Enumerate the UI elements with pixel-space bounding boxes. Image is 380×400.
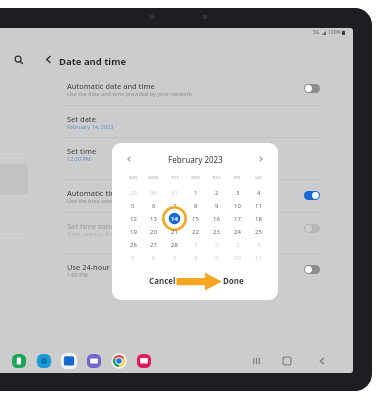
button[interactable]: Home bbox=[277, 351, 297, 371]
button[interactable]: Set time zone bbox=[0, 213, 380, 253]
staticText: Time zone Los Angeles bbox=[67, 230, 126, 237]
button[interactable]: 4 bbox=[248, 186, 269, 199]
button[interactable]: Play Store bbox=[81, 350, 106, 372]
button[interactable]: Chrome bbox=[106, 350, 131, 372]
staticText: 4 bbox=[257, 189, 261, 197]
staticText: 4 bbox=[257, 241, 261, 249]
button[interactable]: 3 bbox=[227, 186, 248, 199]
button[interactable]: Toggle bbox=[304, 191, 320, 200]
staticText: Set time bbox=[67, 146, 97, 156]
button[interactable]: 14 bbox=[164, 212, 185, 225]
button[interactable]: Cancel bbox=[146, 272, 179, 289]
staticText: 100% bbox=[328, 29, 341, 36]
staticText: 26 bbox=[130, 241, 137, 249]
staticText: 21 bbox=[171, 228, 178, 236]
button[interactable]: 1 bbox=[185, 186, 206, 199]
staticText: February 14, 2023 bbox=[67, 123, 114, 130]
button[interactable]: 19 bbox=[123, 225, 143, 238]
button[interactable]: 9 bbox=[206, 251, 227, 264]
button[interactable]: 20 bbox=[143, 225, 164, 238]
button[interactable]: Automatic date and time bbox=[0, 73, 380, 105]
button[interactable]: 1 bbox=[185, 238, 206, 251]
button[interactable]: 15 bbox=[185, 212, 206, 225]
staticText: 23 bbox=[213, 228, 220, 236]
button[interactable]: Toggle bbox=[304, 224, 320, 233]
staticText: 8 bbox=[194, 202, 198, 210]
staticText: SUN bbox=[129, 175, 138, 181]
button[interactable]: Previous month bbox=[121, 151, 137, 167]
staticText: 25 bbox=[255, 228, 262, 236]
button[interactable]: Automatic time zone bbox=[0, 180, 380, 212]
button[interactable]: 6 bbox=[143, 199, 164, 212]
staticText: 20 bbox=[150, 228, 157, 236]
button[interactable]: Set date bbox=[0, 106, 380, 137]
button[interactable]: 11 bbox=[248, 199, 269, 212]
button[interactable]: 17 bbox=[227, 212, 248, 225]
button[interactable]: Search bbox=[9, 50, 29, 70]
button[interactable]: 7 bbox=[164, 199, 185, 212]
button[interactable]: 29 bbox=[123, 186, 143, 199]
button[interactable]: 11 bbox=[248, 251, 269, 264]
button[interactable]: Gallery bbox=[131, 350, 156, 372]
button[interactable]: 10 bbox=[227, 199, 248, 212]
staticText: THU bbox=[212, 175, 221, 181]
button[interactable]: Next month bbox=[253, 151, 269, 167]
button[interactable]: 27 bbox=[143, 238, 164, 251]
staticText: 14 bbox=[171, 215, 178, 223]
staticText: 28 bbox=[171, 241, 178, 249]
button[interactable]: 5 bbox=[123, 251, 143, 264]
staticText: 10 bbox=[234, 254, 241, 262]
staticText: 27 bbox=[150, 241, 157, 249]
button[interactable]: Set time bbox=[0, 138, 380, 179]
button[interactable]: Toggle bbox=[304, 84, 320, 93]
button[interactable]: Toggle bbox=[304, 265, 320, 274]
staticText: Use the date and time provided by your n… bbox=[67, 90, 192, 97]
button[interactable]: Phone bbox=[6, 350, 31, 372]
staticText: 13 bbox=[150, 215, 157, 223]
button[interactable]: 23 bbox=[206, 225, 227, 238]
staticText: 12:20 PM bbox=[67, 155, 91, 162]
button[interactable]: Camera bbox=[31, 350, 56, 372]
button[interactable]: 2 bbox=[206, 238, 227, 251]
button[interactable]: 2 bbox=[206, 186, 227, 199]
button[interactable]: Recents bbox=[247, 352, 265, 370]
staticText: Done bbox=[223, 275, 244, 286]
button[interactable]: 24 bbox=[227, 225, 248, 238]
staticText: 1 bbox=[194, 241, 198, 249]
button[interactable]: 8 bbox=[185, 251, 206, 264]
button[interactable]: 7 bbox=[164, 251, 185, 264]
staticText: Automatic date and time bbox=[67, 81, 155, 91]
button[interactable]: 18 bbox=[248, 212, 269, 225]
button[interactable]: 21 bbox=[164, 225, 185, 238]
button[interactable]: 10 bbox=[227, 251, 248, 264]
staticText: Set time zone bbox=[67, 221, 115, 231]
button[interactable]: Use 24-hour format bbox=[0, 254, 380, 288]
button[interactable]: 30 bbox=[143, 186, 164, 199]
button[interactable]: Done bbox=[220, 272, 247, 289]
staticText: 11 bbox=[255, 254, 262, 262]
button[interactable]: 9 bbox=[206, 199, 227, 212]
button[interactable]: 4 bbox=[248, 238, 269, 251]
button[interactable]: 25 bbox=[248, 225, 269, 238]
staticText: 1 bbox=[194, 189, 198, 197]
button[interactable]: 31 bbox=[164, 186, 185, 199]
button[interactable]: 16 bbox=[206, 212, 227, 225]
staticText: 5 bbox=[131, 254, 135, 262]
button[interactable]: Back bbox=[39, 50, 58, 69]
button[interactable]: 22 bbox=[185, 225, 206, 238]
button[interactable]: 26 bbox=[123, 238, 143, 251]
staticText: Date and time bbox=[59, 55, 127, 68]
button[interactable]: 12 bbox=[123, 212, 143, 225]
button[interactable]: 3 bbox=[227, 238, 248, 251]
button[interactable]: 8 bbox=[185, 199, 206, 212]
staticText: SAT bbox=[255, 175, 263, 181]
button[interactable]: Messages bbox=[56, 350, 81, 372]
staticText: 12 bbox=[130, 215, 137, 223]
button[interactable]: 13 bbox=[143, 212, 164, 225]
staticText: 8 bbox=[194, 254, 198, 262]
button[interactable]: Back bbox=[313, 352, 331, 370]
button[interactable]: 6 bbox=[143, 251, 164, 264]
button[interactable]: 28 bbox=[164, 238, 185, 251]
button[interactable]: 5 bbox=[123, 199, 143, 212]
staticText: 3 bbox=[236, 189, 240, 197]
